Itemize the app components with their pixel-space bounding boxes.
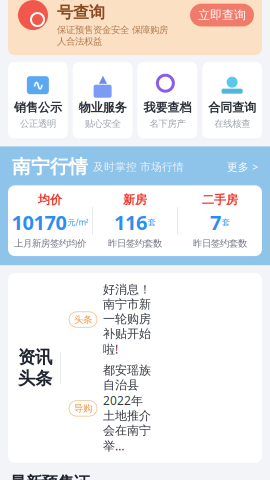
- button[interactable]: ▲: [73, 62, 133, 138]
- button[interactable]: ∿: [8, 62, 68, 138]
- staticText: 最新预售证: [10, 473, 90, 480]
- staticText: 保证预售资金安全 保障购房人合法权益: [57, 24, 168, 47]
- staticText: 上月新房签约均价: [14, 238, 86, 249]
- staticText: 套: [222, 217, 230, 227]
- staticText: 合同查询: [208, 100, 256, 115]
- staticText: 116: [114, 209, 147, 236]
- button[interactable]: 预售资金监管账号查询: [8, 0, 262, 55]
- button[interactable]: 我要查档: [137, 62, 197, 138]
- staticText: 名下房产: [149, 118, 185, 129]
- staticText: 立即查询: [198, 8, 246, 22]
- staticText: 物业服务: [79, 100, 127, 115]
- staticText: ▲: [99, 73, 107, 85]
- staticText: 套: [148, 217, 156, 227]
- staticText: 及时掌控 市场行情: [93, 160, 184, 173]
- staticText: 新房: [123, 192, 147, 207]
- button[interactable]: 合同查询: [202, 62, 262, 138]
- staticText: 元/m²: [67, 217, 88, 228]
- staticText: 南宁行情: [12, 155, 88, 178]
- staticText: 公正透明: [20, 118, 56, 129]
- staticText: 销售公示: [14, 100, 62, 115]
- staticText: 昨日签约套数: [193, 238, 247, 249]
- staticText: 在线核查: [214, 118, 250, 129]
- staticText: 头条: [18, 368, 52, 389]
- staticText: 二手房: [202, 192, 238, 207]
- staticText: 更多 >: [227, 160, 258, 174]
- staticText: 7: [210, 209, 221, 236]
- staticText: 资讯: [18, 347, 52, 368]
- staticText: 都安瑶族自治县2022年土地推介会在南宁举…: [103, 363, 151, 454]
- staticText: 好消息！南宁市新一轮购房补贴开始啦!: [103, 282, 151, 357]
- staticText: 预售资金监管账号查询: [57, 0, 169, 22]
- staticText: 头条: [74, 314, 92, 325]
- staticText: 10170: [11, 209, 66, 236]
- staticText: 我要查档: [143, 100, 191, 115]
- staticText: 贴心安全: [85, 118, 121, 129]
- staticText: 昨日签约套数: [108, 238, 162, 249]
- staticText: ∿: [32, 77, 44, 93]
- button[interactable]: 导购: [69, 363, 160, 454]
- staticText: 均价: [38, 192, 62, 207]
- staticText: 导购: [74, 403, 92, 414]
- button[interactable]: 头条: [69, 282, 160, 357]
- button[interactable]: 南宁行情: [0, 146, 270, 185]
